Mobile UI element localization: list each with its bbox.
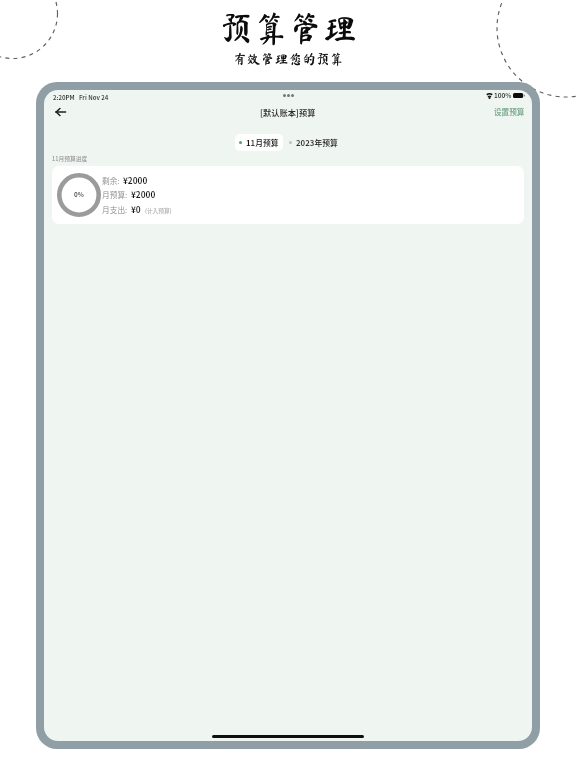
button[interactable]: 设置预算 [491, 104, 528, 119]
staticText: [默认账本]预算 [260, 106, 316, 118]
staticText: 2:20PM [53, 93, 75, 102]
staticText: 11月预算进度 [52, 154, 88, 162]
staticText: ¥2000 [131, 188, 156, 200]
staticText: (计入预算) [145, 206, 172, 214]
button[interactable]: 11月预算 [235, 134, 283, 151]
button[interactable]: Back [50, 102, 70, 122]
staticText: 月支出: [102, 204, 128, 215]
staticText: ¥2000 [123, 174, 148, 186]
staticText: 预算管理 [219, 11, 358, 45]
staticText: 11月预算 [246, 137, 279, 148]
staticText: 月预算: [102, 189, 128, 200]
button[interactable]: 0% [52, 166, 524, 224]
button[interactable]: 2023年预算 [288, 134, 339, 151]
staticText: Fri Nov 24 [79, 93, 109, 102]
staticText: 有效管理您的预算 [233, 52, 344, 66]
staticText: 剩余: [102, 175, 120, 186]
staticText: 预算管理 [219, 11, 358, 45]
staticText: 有效管理您的预算 [233, 52, 344, 66]
staticText: 设置预算 [494, 106, 525, 117]
staticText: 2023年预算 [296, 137, 338, 148]
staticText: 0% [74, 190, 84, 199]
staticText: 100% [494, 91, 512, 100]
staticText: ¥0 [131, 203, 141, 215]
